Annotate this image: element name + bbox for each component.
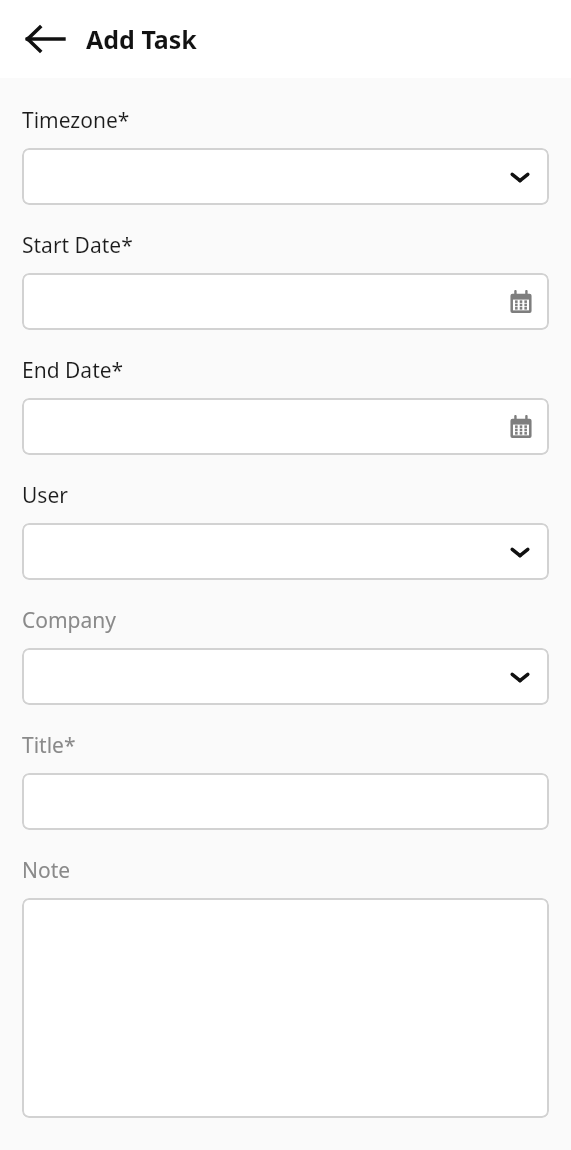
staticText: Add Task [86, 22, 197, 56]
button[interactable] [22, 523, 549, 580]
button[interactable] [22, 773, 549, 830]
staticText: Title* [22, 731, 76, 760]
staticText: Start Date* [22, 231, 133, 260]
button[interactable] [22, 398, 549, 455]
staticText: Note [22, 856, 71, 885]
staticText: Timezone* [22, 106, 130, 135]
button[interactable] [22, 648, 549, 705]
staticText: End Date* [22, 356, 124, 385]
button[interactable] [22, 898, 549, 1118]
button[interactable] [22, 273, 549, 330]
button[interactable]: Back [22, 16, 68, 62]
button[interactable] [22, 148, 549, 205]
staticText: Company [22, 606, 116, 635]
staticText: User [22, 481, 68, 510]
